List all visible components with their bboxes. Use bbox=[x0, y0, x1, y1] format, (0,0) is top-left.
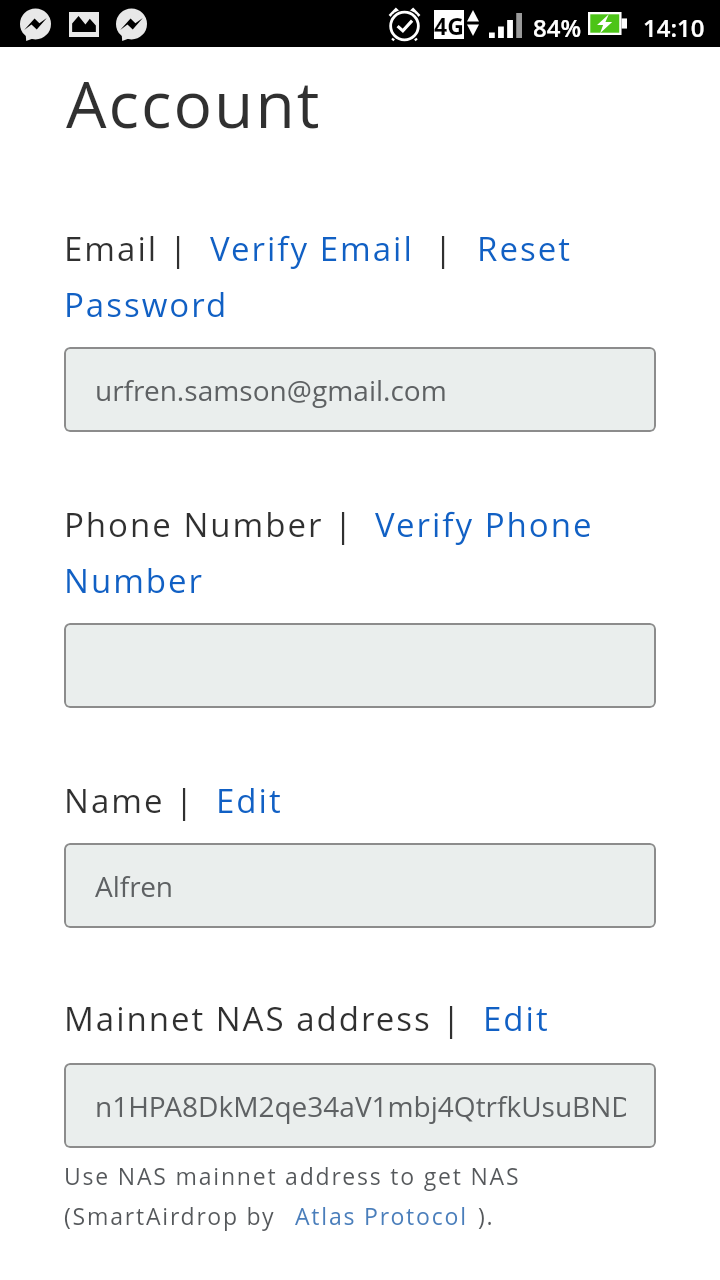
staticText: | bbox=[442, 996, 463, 1041]
button[interactable]: Reset bbox=[477, 226, 572, 271]
staticText: (SmartAirdrop by bbox=[64, 1200, 276, 1231]
staticText: Mainnet NAS address bbox=[64, 996, 432, 1041]
staticText: | bbox=[169, 226, 190, 271]
staticText: Edit bbox=[216, 778, 283, 823]
button[interactable]: Number bbox=[64, 558, 205, 603]
staticText: Number bbox=[64, 558, 205, 603]
staticText: Verify Phone bbox=[375, 502, 594, 547]
staticText: Phone Number bbox=[64, 502, 324, 547]
button[interactable]: Atlas Protocol bbox=[295, 1200, 468, 1231]
staticText: n1HPA8DkM2qe34aV1mbj4QtrfkUsuBNDrgs bbox=[95, 1087, 626, 1125]
staticText: Verify Email bbox=[210, 226, 414, 271]
staticText: | bbox=[334, 502, 355, 547]
staticText: Account bbox=[66, 60, 322, 147]
staticText: Edit bbox=[483, 996, 550, 1041]
staticText: | bbox=[434, 226, 455, 271]
staticText: Email bbox=[64, 226, 159, 271]
staticText: Reset bbox=[477, 226, 572, 271]
staticText: ). bbox=[478, 1200, 495, 1231]
staticText: urfren.samson@gmail.com bbox=[95, 371, 447, 409]
button[interactable]: urfren.samson@gmail.com bbox=[64, 347, 656, 432]
staticText: Use NAS mainnet address to get NAS bbox=[64, 1160, 521, 1191]
button[interactable]: Edit bbox=[216, 778, 283, 823]
staticText: Password bbox=[64, 282, 229, 327]
staticText: Name bbox=[64, 778, 165, 823]
button[interactable]: Alfren bbox=[64, 843, 656, 928]
button[interactable]: n1HPA8DkM2qe34aV1mbj4QtrfkUsuBNDrgs bbox=[64, 1063, 656, 1148]
button[interactable]: Verify Email bbox=[210, 226, 414, 271]
button[interactable] bbox=[64, 623, 656, 708]
staticText: Alfren bbox=[95, 867, 174, 905]
button[interactable]: Password bbox=[64, 282, 229, 327]
staticText: | bbox=[175, 778, 196, 823]
staticText: Atlas Protocol bbox=[295, 1200, 468, 1231]
staticText: 4G bbox=[434, 10, 464, 39]
button[interactable]: Edit bbox=[483, 996, 550, 1041]
staticText: 14:10 bbox=[643, 11, 705, 44]
staticText: 84% bbox=[533, 11, 582, 44]
button[interactable]: Verify Phone bbox=[375, 502, 594, 547]
